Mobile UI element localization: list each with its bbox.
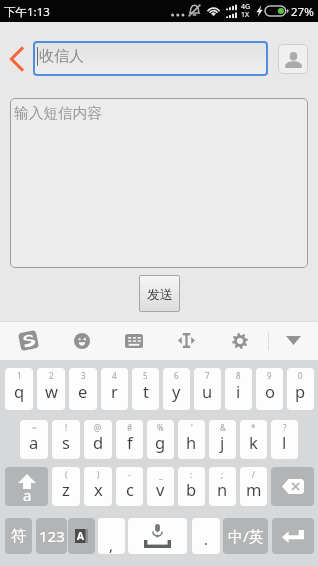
- staticText: a: [23, 485, 32, 505]
- staticText: e: [78, 380, 88, 402]
- button[interactable]: Sogou input: [9, 321, 47, 360]
- staticText: b: [186, 478, 197, 500]
- button[interactable]: 输入短信内容: [10, 98, 308, 268]
- staticText: 0: [298, 370, 303, 381]
- staticText: j: [220, 431, 225, 453]
- button[interactable]: !: [52, 420, 80, 459]
- staticText: ?: [283, 422, 287, 433]
- staticText: _: [159, 469, 163, 480]
- staticText: @: [94, 422, 102, 433]
- button[interactable]: Back: [3, 42, 30, 76]
- button[interactable]: Keyboard layout: [115, 321, 153, 360]
- staticText: a: [29, 431, 39, 453]
- button[interactable]: 9: [256, 368, 283, 410]
- staticText: w: [45, 380, 58, 402]
- staticText: 6: [174, 370, 179, 381]
- staticText: t: [143, 380, 149, 402]
- staticText: i: [236, 380, 241, 402]
- button[interactable]: Enter: [272, 518, 314, 554]
- button[interactable]: 1: [5, 368, 33, 410]
- button[interactable]: _: [147, 467, 174, 506]
- button[interactable]: #: [116, 420, 143, 459]
- staticText: 7: [205, 370, 210, 381]
- staticText: &: [220, 422, 226, 433]
- button[interactable]: 5: [132, 368, 159, 410]
- button[interactable]: 0: [287, 368, 314, 410]
- staticText: 4: [112, 370, 117, 381]
- staticText: -: [128, 469, 131, 480]
- staticText: ~: [32, 422, 37, 433]
- button[interactable]: ?: [271, 420, 298, 459]
- button[interactable]: 符: [5, 518, 32, 554]
- button[interactable]: 7: [194, 368, 221, 410]
- staticText: 8: [236, 370, 241, 381]
- staticText: .: [204, 529, 209, 549]
- button[interactable]: @: [84, 420, 112, 459]
- button[interactable]: Switch input method: [68, 518, 95, 554]
- staticText: q: [14, 380, 25, 402]
- button[interactable]: Settings: [221, 321, 259, 360]
- staticText: g: [155, 431, 166, 453]
- button[interactable]: -: [116, 467, 143, 506]
- button[interactable]: Space: [128, 518, 187, 554]
- button[interactable]: 8: [225, 368, 252, 410]
- staticText: x: [94, 478, 103, 500]
- button[interactable]: %: [147, 420, 174, 459]
- button[interactable]: 123: [36, 518, 67, 554]
- staticText: y: [172, 380, 181, 402]
- button[interactable]: Backspace: [271, 467, 314, 506]
- staticText: 中/英: [228, 526, 264, 546]
- staticText: 1: [17, 370, 22, 381]
- staticText: 27%: [291, 4, 314, 20]
- staticText: r: [111, 380, 118, 402]
- button[interactable]: /: [240, 467, 267, 506]
- button[interactable]: ,: [98, 518, 125, 554]
- button[interactable]: (: [52, 467, 80, 506]
- staticText: ,: [109, 535, 114, 555]
- staticText: h: [186, 431, 197, 453]
- staticText: k: [249, 431, 258, 453]
- button[interactable]: Hide keyboard: [274, 321, 312, 360]
- button[interactable]: ): [84, 467, 112, 506]
- staticText: A: [77, 529, 84, 543]
- button[interactable]: .: [192, 518, 220, 554]
- staticText: d: [93, 431, 104, 453]
- staticText: f: [127, 431, 133, 453]
- staticText: m: [246, 478, 262, 500]
- staticText: 收信人: [39, 47, 84, 66]
- button[interactable]: ~: [20, 420, 48, 459]
- staticText: !: [65, 422, 68, 433]
- staticText: u: [202, 380, 213, 402]
- staticText: 4G: [241, 2, 251, 12]
- staticText: 下午1:13: [4, 4, 50, 20]
- staticText: v: [156, 478, 165, 500]
- staticText: #: [127, 422, 133, 433]
- button[interactable]: Emoji: [63, 321, 101, 360]
- staticText: ': [191, 422, 193, 433]
- staticText: 3: [81, 370, 86, 381]
- button[interactable]: 3: [69, 368, 97, 410]
- button[interactable]: ': [178, 420, 205, 459]
- button[interactable]: 6: [163, 368, 190, 410]
- staticText: n: [217, 478, 228, 500]
- button[interactable]: 收信人: [33, 41, 268, 76]
- button[interactable]: ;: [209, 467, 236, 506]
- button[interactable]: *: [240, 420, 267, 459]
- staticText: 1X: [241, 10, 250, 20]
- button[interactable]: 中/英: [223, 518, 268, 554]
- staticText: /: [252, 469, 255, 480]
- button[interactable]: 4: [101, 368, 128, 410]
- button[interactable]: Choose contact: [278, 44, 308, 74]
- staticText: 发送: [147, 286, 173, 302]
- button[interactable]: Shift: [5, 467, 48, 506]
- staticText: o: [265, 380, 275, 402]
- button[interactable]: 2: [37, 368, 65, 410]
- staticText: 2: [49, 370, 54, 381]
- button[interactable]: Move cursor: [167, 321, 205, 360]
- button[interactable]: :: [178, 467, 205, 506]
- staticText: :: [190, 469, 193, 480]
- button[interactable]: 发送: [139, 275, 180, 312]
- staticText: 123: [39, 526, 65, 546]
- button[interactable]: &: [209, 420, 236, 459]
- staticText: l: [282, 431, 287, 453]
